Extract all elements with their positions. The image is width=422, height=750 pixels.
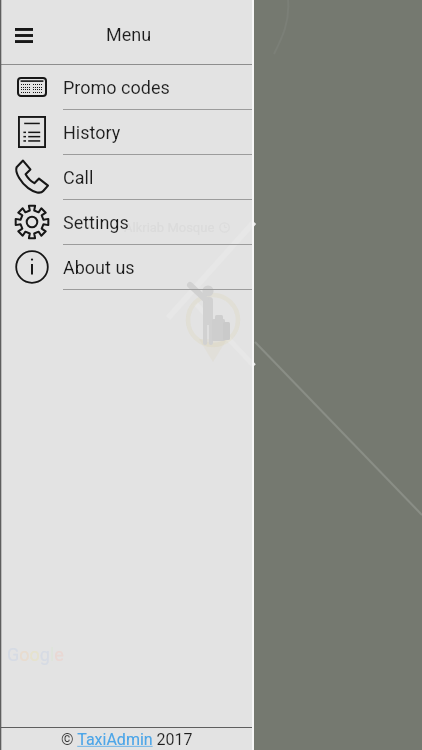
- button[interactable]: Promo codes: [0, 65, 254, 110]
- button[interactable]: Call: [0, 155, 254, 200]
- staticText: Alkriab Mosque: [124, 220, 215, 235]
- staticText: © TaxiAdmin 2017: [61, 730, 193, 749]
- staticText: Settings: [63, 212, 129, 233]
- staticText: About us: [63, 257, 135, 278]
- button[interactable]: About us: [0, 245, 254, 290]
- staticText: Call: [63, 167, 94, 188]
- staticText: Menu: [106, 24, 152, 45]
- staticText: Promo codes: [63, 77, 170, 98]
- button[interactable]: History: [0, 110, 254, 155]
- button[interactable]: Settings: [0, 200, 254, 245]
- staticText: History: [63, 122, 121, 143]
- button[interactable]: Open navigation menu: [1, 12, 47, 58]
- staticText: Google: [7, 644, 64, 665]
- button[interactable]: © TaxiAdmin 2017: [0, 728, 254, 750]
